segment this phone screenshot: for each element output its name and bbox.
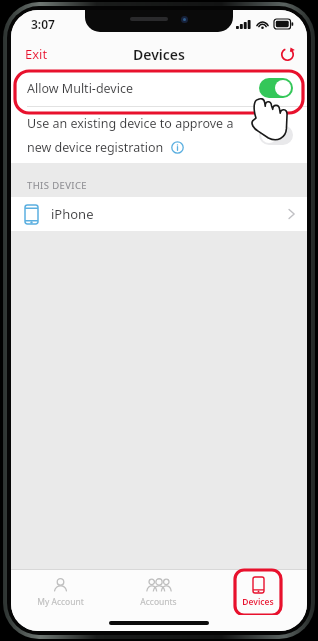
button[interactable]: Use an existing device to approve a (11, 107, 307, 163)
button[interactable]: My Account (11, 570, 109, 615)
button[interactable]: iPhone (11, 197, 307, 231)
button[interactable]: Allow Multi-device (11, 70, 307, 106)
staticText: Use an existing device to approve a (27, 115, 234, 132)
staticText: 3:07 (31, 16, 55, 32)
staticText: My Account (37, 596, 84, 608)
staticText: Allow Multi-device (27, 80, 259, 97)
button[interactable]: Refresh (268, 42, 307, 67)
button[interactable]: Accounts (109, 570, 208, 615)
button[interactable]: Exit (11, 40, 62, 68)
button[interactable]: Information (171, 141, 184, 154)
staticText: Accounts (140, 596, 177, 608)
staticText: Exit (25, 45, 48, 63)
staticText: new device registration (27, 139, 164, 156)
staticText: iPhone (51, 205, 288, 223)
staticText: THIS DEVICE (27, 179, 88, 192)
button[interactable]: Toggle off (259, 125, 293, 145)
staticText: Devices (242, 596, 274, 608)
staticText: Devices (133, 45, 185, 64)
button[interactable]: Devices (208, 570, 307, 615)
button[interactable]: Toggle on (259, 78, 293, 98)
